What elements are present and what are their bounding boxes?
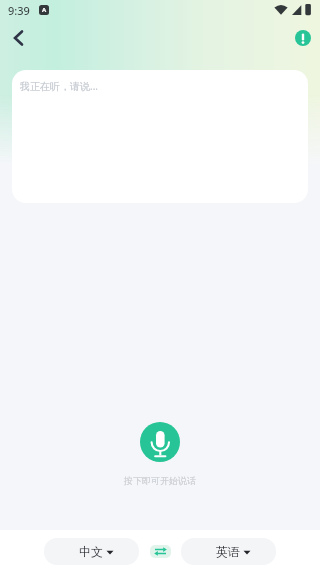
button[interactable] <box>295 30 311 46</box>
staticText: 按下即可开始说话 <box>124 475 196 486</box>
staticText: 英语 <box>216 544 240 559</box>
button[interactable]: 中文 <box>44 538 139 565</box>
staticText: 中文 <box>79 544 103 559</box>
staticText: 9:39 <box>8 3 30 18</box>
staticText: 我正在听，请说... <box>20 79 99 93</box>
button[interactable] <box>8 26 32 50</box>
button[interactable] <box>140 422 180 462</box>
staticText: A <box>42 6 47 14</box>
button[interactable] <box>150 545 171 558</box>
button[interactable]: 英语 <box>181 538 276 565</box>
